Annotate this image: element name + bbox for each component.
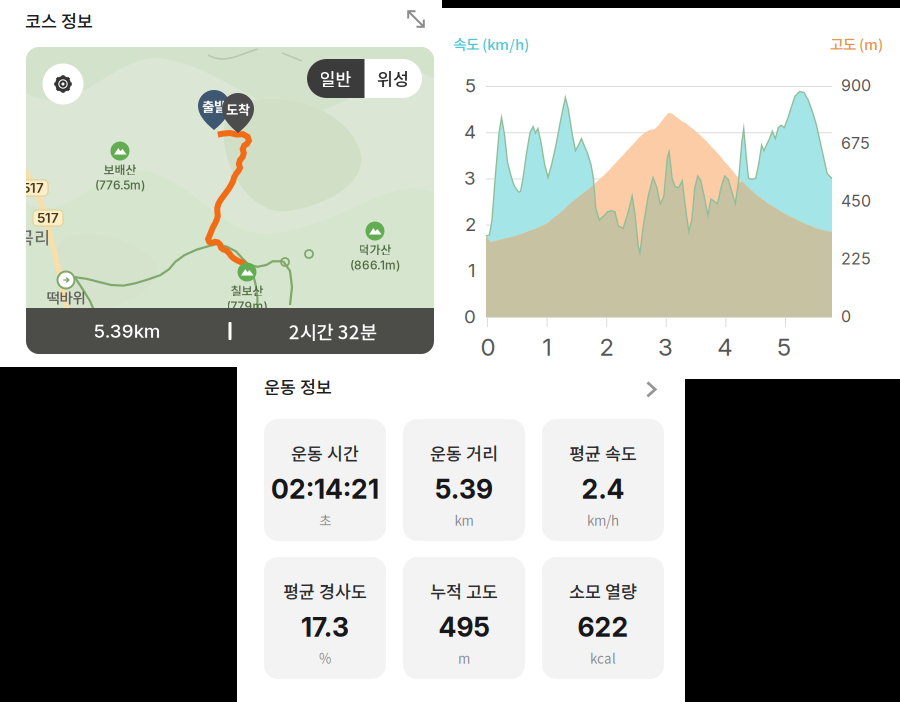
staticText: 평균 속도	[569, 440, 637, 466]
staticText: (779m)	[226, 299, 267, 313]
staticText: 622	[577, 611, 628, 643]
staticText: 4	[464, 120, 476, 143]
staticText: %	[319, 648, 331, 668]
staticText: 5.39km	[94, 320, 161, 342]
staticText: 곡리	[18, 224, 50, 250]
staticText: 2	[599, 332, 613, 361]
staticText: 5.39	[435, 473, 493, 505]
staticText: 칠보산	[230, 282, 263, 299]
button[interactable]: Expand map	[407, 10, 425, 28]
staticText: 495	[438, 611, 489, 643]
staticText: 소모 열량	[569, 578, 637, 604]
staticText: 0	[841, 307, 851, 326]
staticText: 2.4	[581, 473, 624, 505]
staticText: 출발	[202, 96, 226, 116]
staticText: 517	[22, 180, 44, 196]
staticText: m	[458, 648, 470, 668]
staticText: km/h	[587, 510, 619, 530]
staticText: 속도 (km/h)	[453, 33, 529, 54]
staticText: 02:14:21	[271, 473, 379, 505]
staticText: 450	[841, 191, 871, 211]
staticText: 225	[841, 249, 871, 268]
staticText: km	[454, 510, 473, 530]
staticText: 675	[841, 134, 870, 153]
staticText: 도착	[226, 99, 250, 119]
staticText: 900	[841, 76, 871, 95]
staticText: 위성	[377, 66, 409, 91]
button[interactable]: 일반	[307, 59, 364, 98]
staticText: 운동 거리	[430, 440, 498, 466]
staticText: 2	[465, 213, 476, 235]
staticText: 0	[464, 305, 476, 328]
staticText: 2시간 32분	[289, 317, 377, 344]
button[interactable]: Map settings	[42, 63, 83, 104]
staticText: 보배산	[103, 161, 136, 178]
staticText: (866.1m)	[350, 258, 400, 272]
staticText: 0	[480, 332, 495, 361]
staticText: 고도 (m)	[830, 33, 883, 54]
staticText: 1	[542, 332, 552, 361]
staticText: 떡바위	[46, 286, 85, 308]
staticText: 3	[658, 332, 673, 361]
staticText: 코스 정보	[25, 8, 93, 33]
staticText: 5	[465, 74, 476, 97]
staticText: 초	[319, 510, 331, 530]
button[interactable]: 운동 정보	[237, 376, 685, 402]
staticText: 1	[468, 259, 476, 282]
staticText: 평균 경사도	[283, 578, 367, 604]
staticText: 5	[777, 332, 791, 361]
staticText: 운동 시간	[291, 440, 359, 466]
staticText: (776.5m)	[95, 178, 145, 192]
staticText: 누적 고도	[430, 578, 498, 604]
staticText: 운동 정보	[264, 374, 332, 399]
staticText: 17.3	[301, 611, 349, 643]
button[interactable]: 위성	[364, 59, 422, 98]
staticText: 일반	[319, 66, 351, 91]
staticText: 517	[37, 210, 59, 226]
staticText: 4	[717, 332, 732, 361]
staticText: 덕가산	[358, 241, 391, 258]
staticText: 3	[464, 167, 476, 189]
staticText: kcal	[590, 648, 616, 668]
